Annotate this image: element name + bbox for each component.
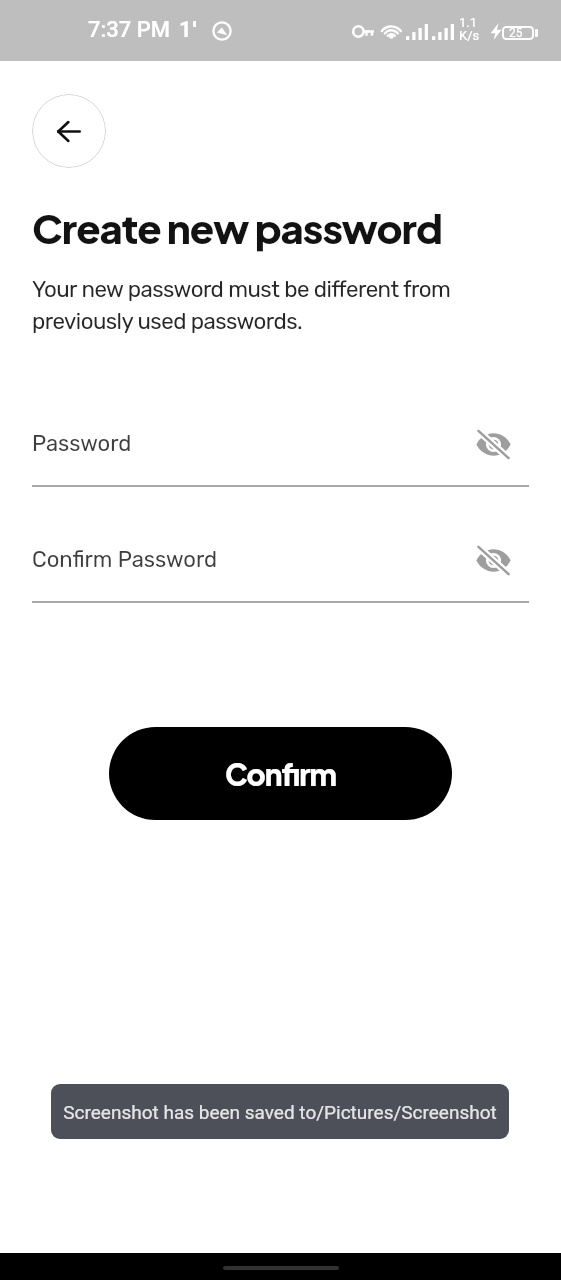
staticText: Confirm — [225, 755, 336, 792]
staticText: 25 — [509, 26, 523, 40]
button[interactable]: Toggle password visibility — [473, 424, 513, 464]
staticText: Confirm Password — [32, 546, 218, 572]
button[interactable]: Confirm — [109, 727, 452, 820]
staticText: Screenshot has been saved to/Pictures/Sc… — [63, 1101, 497, 1123]
staticText: 1.1 — [459, 15, 478, 30]
button[interactable]: Toggle password visibility — [473, 540, 513, 580]
staticText: Your new password must be different from… — [32, 276, 451, 335]
staticText: K/s — [459, 28, 480, 43]
staticText: 1 — [179, 17, 192, 43]
staticText: Password — [32, 430, 132, 456]
button[interactable]: Back — [32, 94, 106, 168]
staticText: Create new password — [32, 202, 442, 252]
staticText: 7:37 PM — [88, 17, 171, 43]
